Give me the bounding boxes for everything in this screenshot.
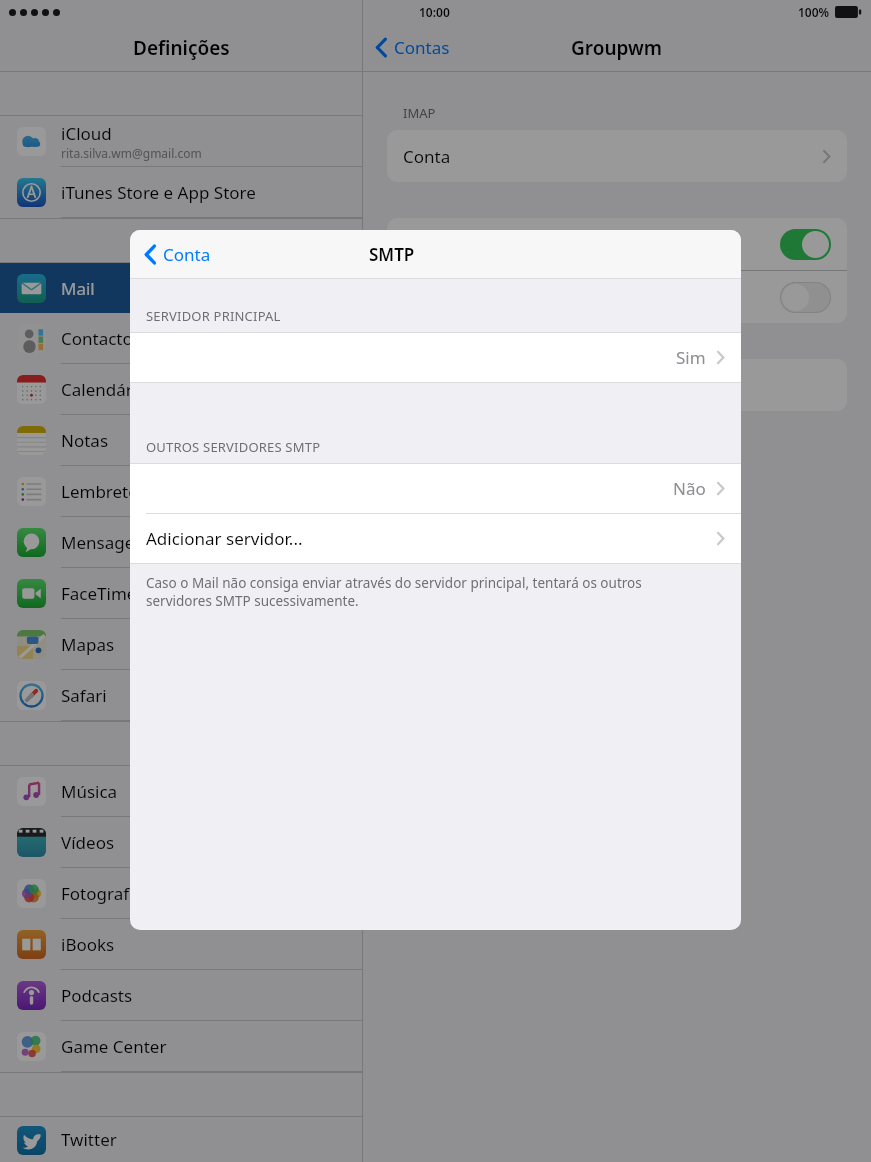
staticText: Calendário (61, 378, 148, 401)
button[interactable]: iBooks (0, 919, 362, 969)
button[interactable]: Música (0, 766, 362, 816)
staticText: SMTP (369, 243, 415, 266)
button[interactable] (387, 359, 847, 411)
staticText: Twitter (61, 1128, 117, 1151)
button[interactable]: Fotografias e Câmara (0, 868, 362, 918)
button[interactable]: FaceTime (0, 568, 362, 618)
button[interactable]: Contactos (0, 313, 362, 363)
button[interactable]: Game Center (0, 1021, 362, 1071)
button[interactable]: iCloud (0, 116, 362, 166)
button[interactable]: iTunes Store e App Store (0, 167, 362, 217)
other: Ligado (780, 229, 831, 260)
button[interactable]: Mail (387, 271, 847, 323)
button[interactable]: Adicionar servidor... (130, 514, 741, 563)
button[interactable]: Conta (387, 130, 847, 182)
staticText: Podcasts (61, 984, 133, 1007)
button[interactable]: Calendário (0, 364, 362, 414)
staticText: 10:00 (419, 4, 450, 20)
staticText: Contactos (61, 327, 141, 350)
staticText: Vídeos (61, 831, 115, 854)
staticText: Conta (403, 145, 451, 168)
button[interactable]: Sim (130, 333, 741, 382)
button[interactable]: Lembretes (0, 466, 362, 516)
staticText: SERVIDOR PRINCIPAL (146, 307, 281, 325)
staticText: Conta (163, 243, 211, 266)
staticText: Mapas (61, 633, 115, 656)
button[interactable]: Mail (0, 263, 362, 313)
staticText: Notas (61, 429, 109, 452)
button[interactable]: Safari (0, 670, 362, 720)
staticText: Sim (676, 346, 706, 369)
staticText: OUTROS SERVIDORES SMTP (146, 438, 321, 456)
staticText: Notas (403, 233, 451, 256)
staticText: IMAP (403, 104, 436, 122)
staticText: Caso o Mail não consiga enviar através d… (146, 574, 701, 610)
other: Desligado (780, 282, 831, 313)
staticText: iCloud (61, 122, 112, 145)
staticText: Game Center (61, 1035, 167, 1058)
staticText: Definições (133, 35, 230, 61)
button[interactable]: Contas (375, 36, 450, 59)
button[interactable]: Twitter (0, 1117, 362, 1162)
staticText: Safari (61, 684, 107, 707)
button[interactable]: Conta (144, 243, 211, 266)
staticText: Lembretes (61, 480, 146, 503)
staticText: Fotografias e Câmara (61, 882, 232, 905)
staticText: rita.silva.wm@gmail.com (61, 145, 202, 161)
staticText: 100% (798, 4, 830, 20)
staticText: FaceTime (61, 582, 137, 605)
button[interactable]: Não (130, 464, 741, 513)
button[interactable]: Mapas (0, 619, 362, 669)
staticText: Groupwm (571, 35, 663, 61)
staticText: Adicionar servidor... (146, 527, 303, 550)
staticText: Contas (394, 36, 450, 59)
staticText: Mensagens (61, 531, 153, 554)
button[interactable]: Notas (0, 415, 362, 465)
button[interactable]: Vídeos (0, 817, 362, 867)
button[interactable]: Podcasts (0, 970, 362, 1020)
staticText: Música (61, 780, 118, 803)
button[interactable]: Mensagens (0, 517, 362, 567)
button[interactable]: Notas (387, 218, 847, 270)
staticText: iBooks (61, 933, 115, 956)
staticText: iTunes Store e App Store (61, 181, 256, 204)
staticText: Mail (61, 277, 95, 300)
staticText: Não (673, 477, 706, 500)
